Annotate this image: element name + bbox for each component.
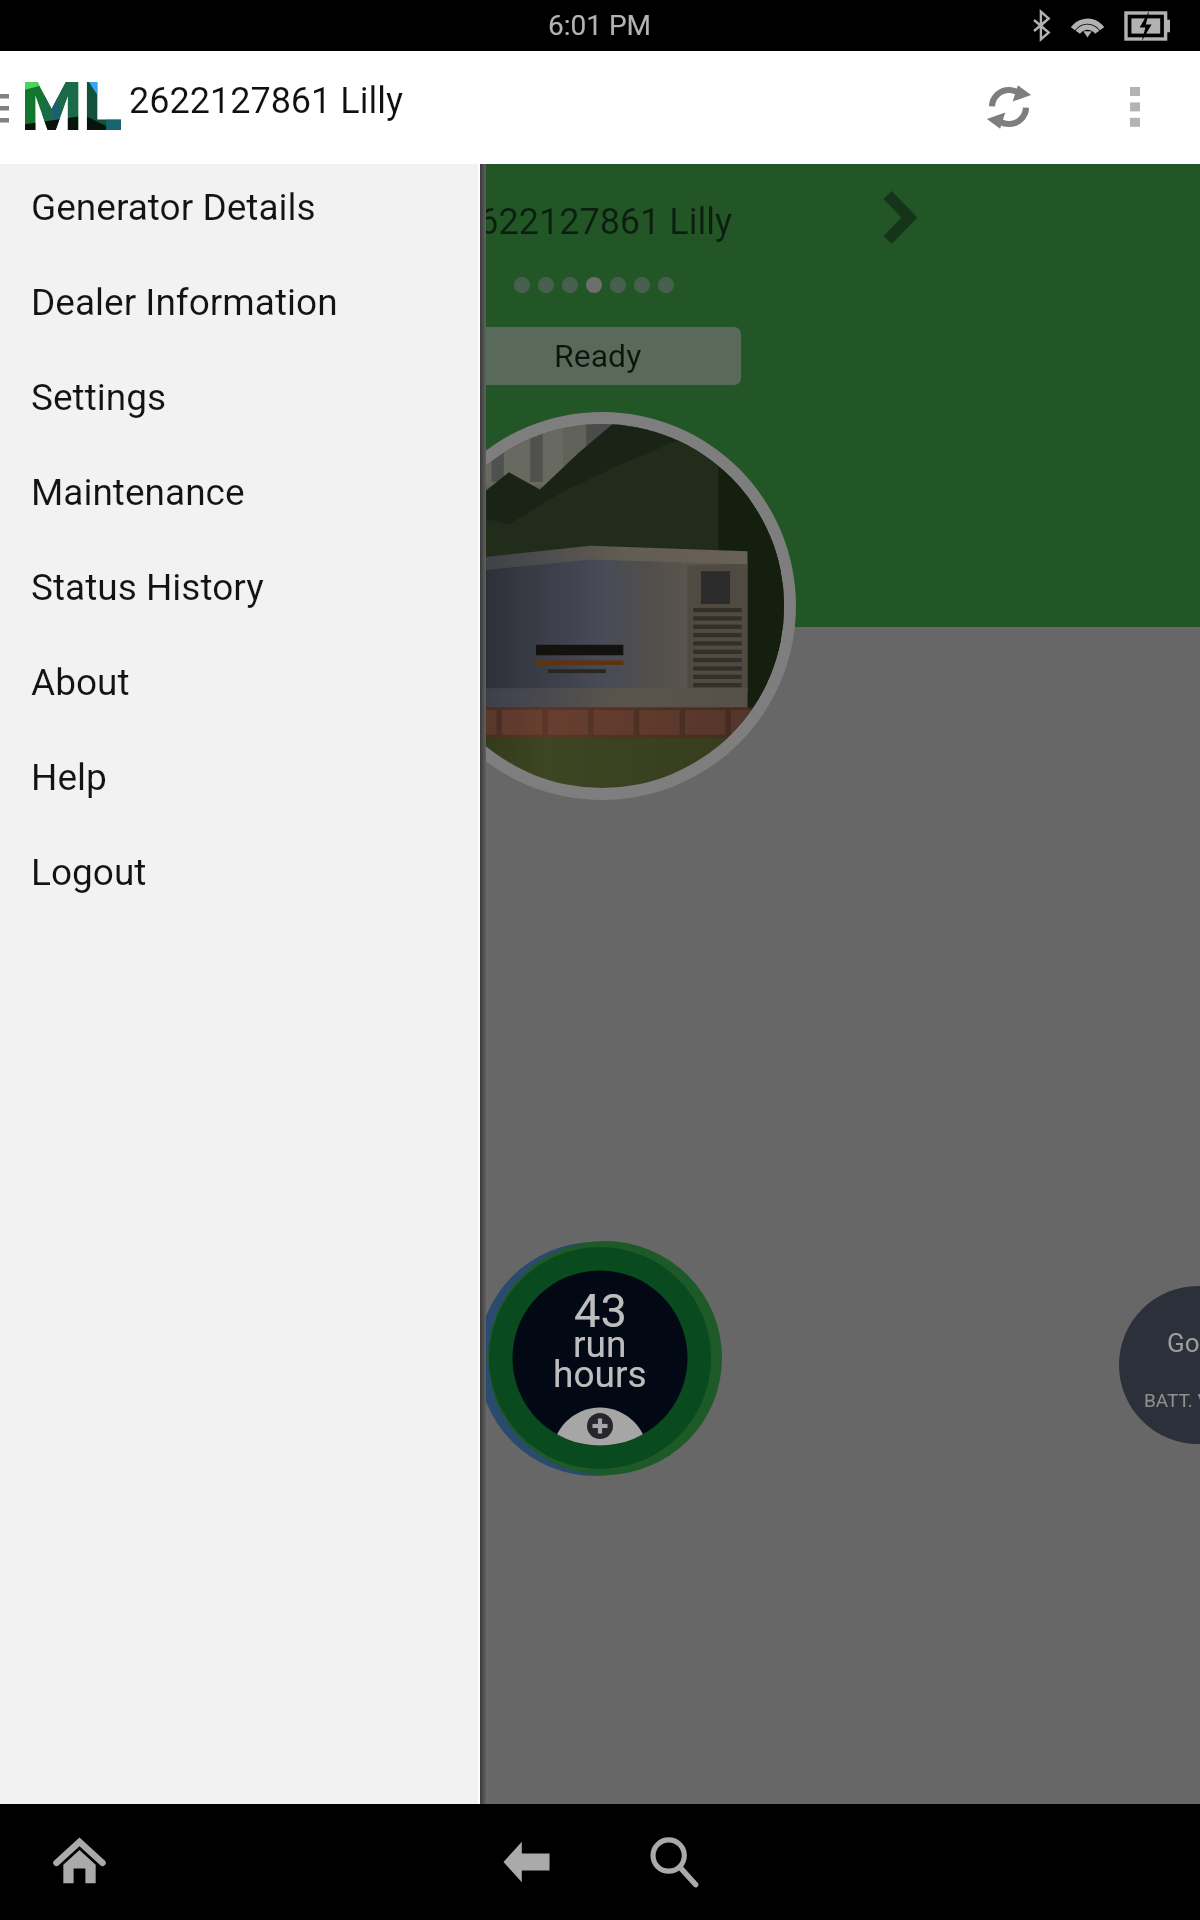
staticText: run [573, 1323, 627, 1366]
staticText: BATT. VOLTS [1144, 1389, 1200, 1411]
staticText: Maintenance [31, 471, 245, 514]
staticText: 6:01 PM [548, 9, 652, 42]
staticText: Dealer Information [31, 281, 338, 324]
button[interactable]: Help [0, 730, 478, 825]
staticText: 2622127861 Lilly [129, 80, 403, 122]
staticText: Good [1167, 1328, 1200, 1358]
button[interactable]: About [0, 635, 478, 730]
button[interactable]: Home [34, 1817, 124, 1907]
staticText: hours [553, 1353, 647, 1396]
button[interactable]: Open navigation drawer [0, 60, 34, 156]
staticText: 43 [574, 1283, 627, 1338]
button[interactable]: 43 [482, 1240, 718, 1476]
button[interactable]: Search [628, 1817, 718, 1907]
staticText: Status History [31, 566, 264, 609]
button[interactable]: Logout [0, 825, 478, 920]
button[interactable]: Ready [455, 327, 741, 385]
button[interactable]: Status History [0, 540, 478, 635]
button[interactable]: Next generator [861, 180, 936, 255]
button[interactable]: More options [1087, 59, 1183, 155]
button[interactable]: Refresh [961, 59, 1057, 155]
staticText: Generator Details [31, 186, 316, 229]
staticText: Settings [31, 376, 167, 419]
staticText: 2622127861 Lilly [458, 201, 732, 243]
staticText: Ready [554, 337, 642, 375]
staticText: Logout [31, 851, 147, 894]
button[interactable]: Good [1119, 1286, 1200, 1444]
button[interactable]: Settings [0, 350, 478, 445]
button[interactable]: Maintenance [0, 445, 478, 540]
staticText: Help [31, 756, 107, 799]
button[interactable]: Generator Details [0, 160, 478, 255]
staticText: About [31, 661, 130, 704]
button[interactable]: Dealer Information [0, 255, 478, 350]
button[interactable]: Back [481, 1817, 571, 1907]
